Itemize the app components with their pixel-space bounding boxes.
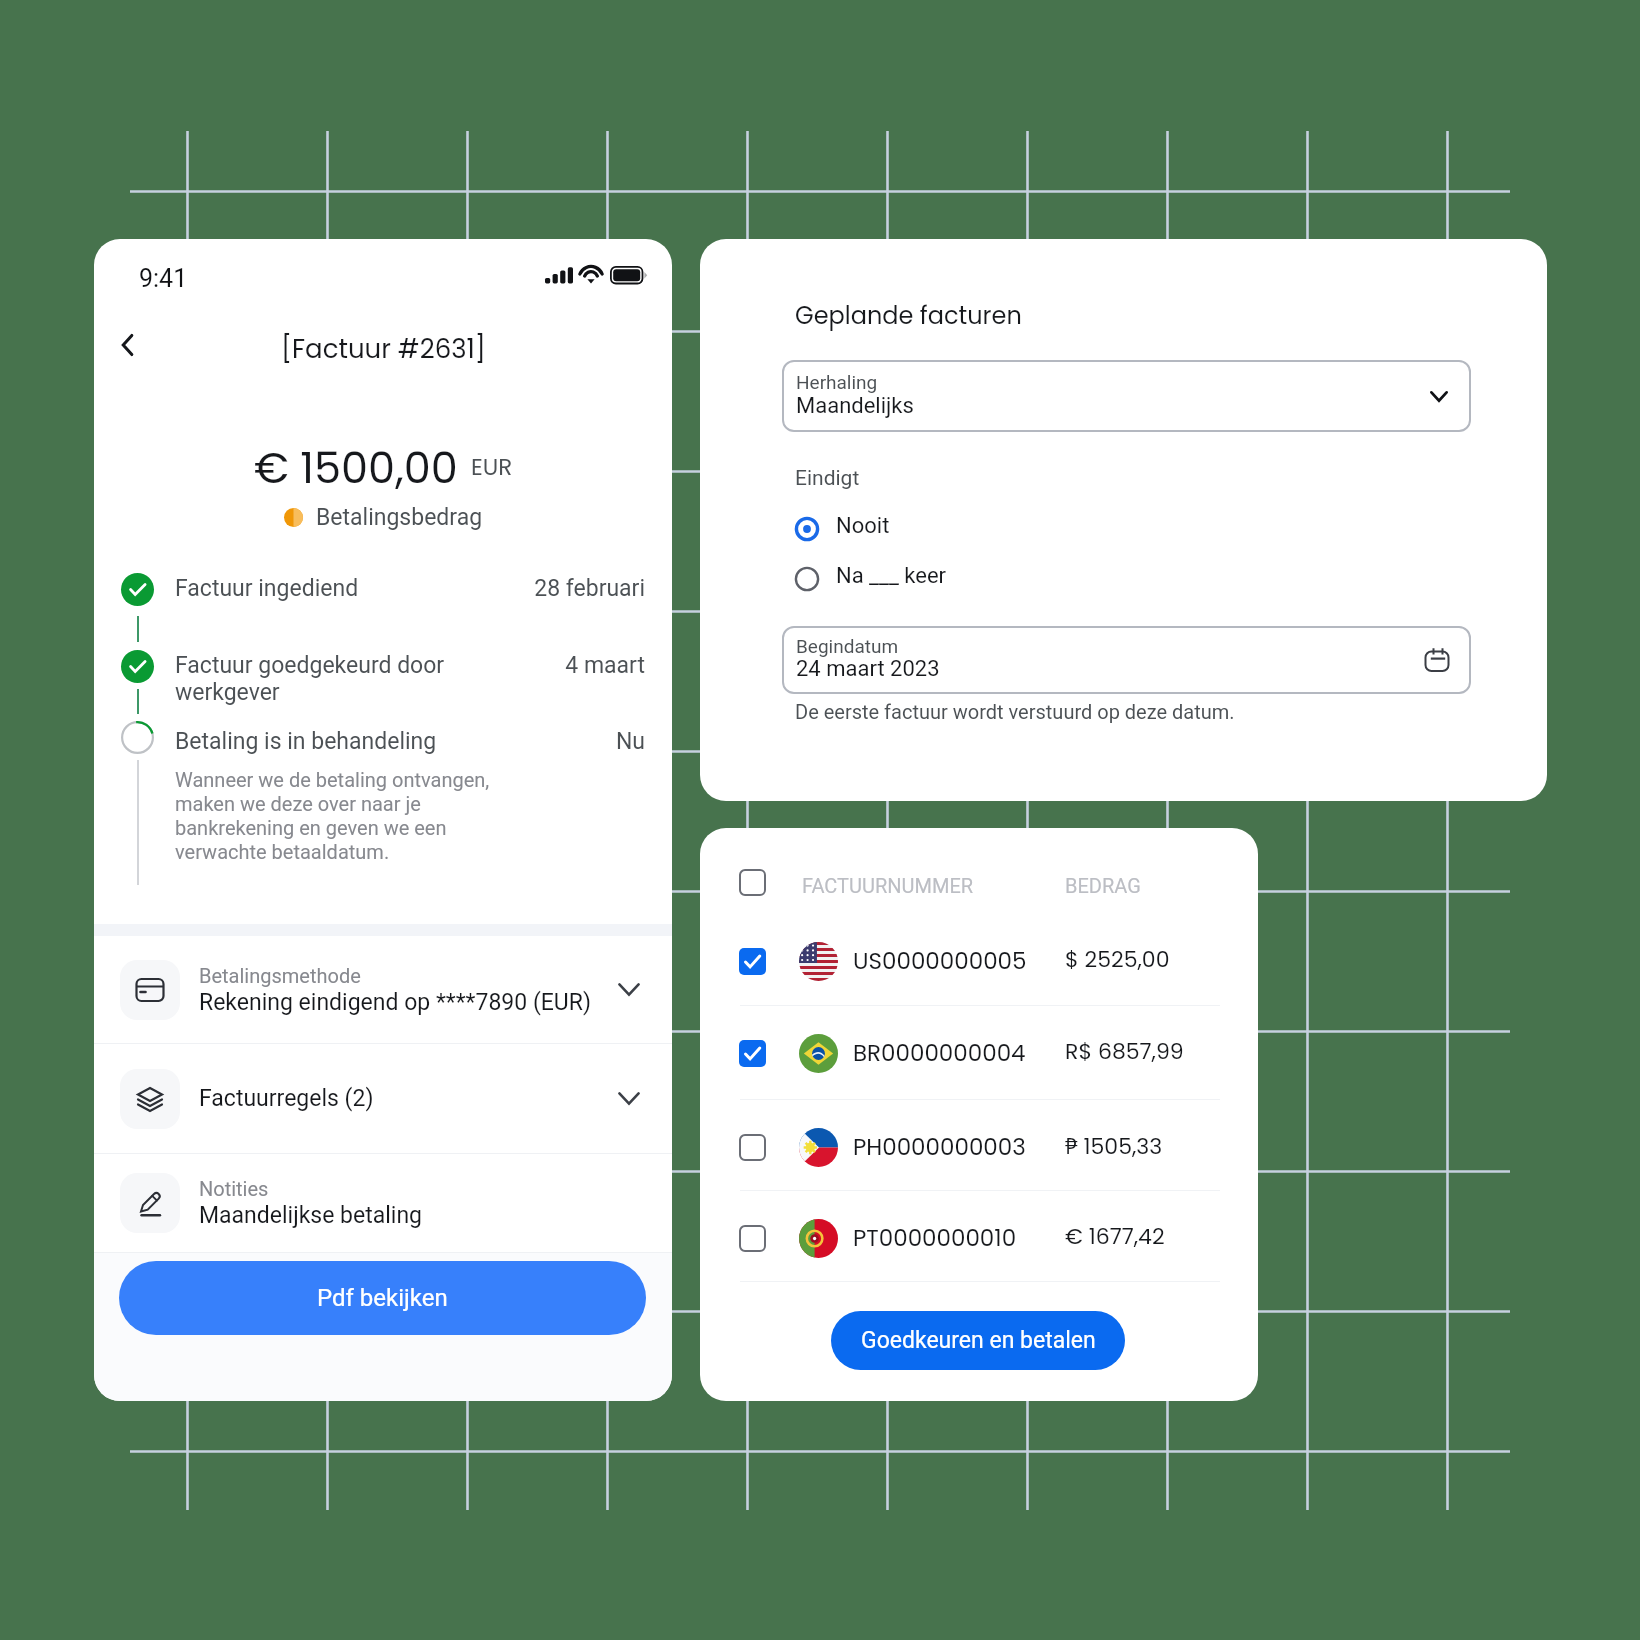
staticText: PH0000000003 bbox=[853, 1131, 1026, 1163]
button[interactable]: Begindatum bbox=[782, 626, 1471, 694]
staticText: EUR bbox=[471, 451, 513, 483]
staticText: € 1500,00 bbox=[254, 438, 458, 498]
staticText: Betalingsbedrag bbox=[316, 504, 483, 531]
button[interactable]: Pdf bekijken bbox=[119, 1261, 646, 1335]
staticText: Maandelijkse betaling bbox=[199, 1202, 423, 1229]
staticText: Notities bbox=[199, 1177, 269, 1200]
staticText: 24 maart 2023 bbox=[796, 656, 940, 682]
staticText: Na ___ keer bbox=[836, 563, 947, 589]
button[interactable]: Na ___ keer bbox=[791, 562, 947, 595]
staticText: 28 februari bbox=[498, 575, 645, 602]
staticText: $ 2525,00 bbox=[1065, 944, 1170, 975]
staticText: ₱ 1505,33 bbox=[1065, 1130, 1163, 1161]
button[interactable]: Back bbox=[104, 321, 152, 369]
button[interactable]: PT0000000010 bbox=[700, 1192, 1258, 1284]
staticText: Factuurregels (2) bbox=[199, 1085, 374, 1112]
staticText: Maandelijks bbox=[796, 393, 914, 419]
staticText: Herhaling bbox=[796, 371, 878, 393]
staticText: Factuur ingediend bbox=[175, 575, 359, 602]
button[interactable]: Nooit bbox=[791, 512, 890, 545]
staticText: BEDRAG bbox=[1065, 874, 1141, 897]
staticText: Rekening eindigend op ****7890 (EUR) bbox=[199, 989, 591, 1016]
staticText: [Factuur #2631] bbox=[281, 331, 486, 367]
staticText: Eindigt bbox=[795, 466, 860, 491]
button[interactable]: Notities bbox=[94, 1154, 672, 1252]
button[interactable]: Select all bbox=[736, 866, 768, 898]
staticText: Wanneer we de betaling ontvangen, maken … bbox=[175, 768, 490, 864]
staticText: 9:41 bbox=[139, 264, 188, 293]
button[interactable]: Factuurregels (2) bbox=[94, 1044, 672, 1153]
staticText: PT0000000010 bbox=[853, 1222, 1017, 1254]
staticText: Pdf bekijken bbox=[317, 1284, 448, 1312]
button[interactable]: Goedkeuren en betalen bbox=[831, 1311, 1125, 1370]
staticText: 4 maart bbox=[498, 652, 645, 679]
staticText: FACTUURNUMMER bbox=[802, 874, 974, 897]
staticText: Factuur goedgekeurd door werkgever bbox=[175, 652, 445, 706]
staticText: Geplande facturen bbox=[795, 299, 1022, 333]
staticText: Betalingsmethode bbox=[199, 964, 361, 987]
button[interactable]: BR0000000004 bbox=[700, 1007, 1258, 1099]
staticText: Begindatum bbox=[796, 635, 899, 657]
staticText: US0000000005 bbox=[853, 945, 1027, 977]
staticText: Nu bbox=[498, 728, 645, 755]
staticText: € 1677,42 bbox=[1065, 1221, 1165, 1252]
staticText: Nooit bbox=[836, 513, 890, 539]
button[interactable]: US0000000005 bbox=[700, 915, 1258, 1007]
staticText: Goedkeuren en betalen bbox=[861, 1327, 1096, 1354]
button[interactable]: Betalingsmethode bbox=[94, 936, 672, 1043]
staticText: De eerste factuur wordt verstuurd op dez… bbox=[795, 700, 1235, 723]
staticText: R$ 6857,99 bbox=[1065, 1036, 1184, 1067]
staticText: Betaling is in behandeling bbox=[175, 728, 437, 755]
button[interactable]: Herhaling bbox=[782, 360, 1471, 432]
button[interactable]: PH0000000003 bbox=[700, 1101, 1258, 1193]
staticText: BR0000000004 bbox=[853, 1037, 1026, 1069]
